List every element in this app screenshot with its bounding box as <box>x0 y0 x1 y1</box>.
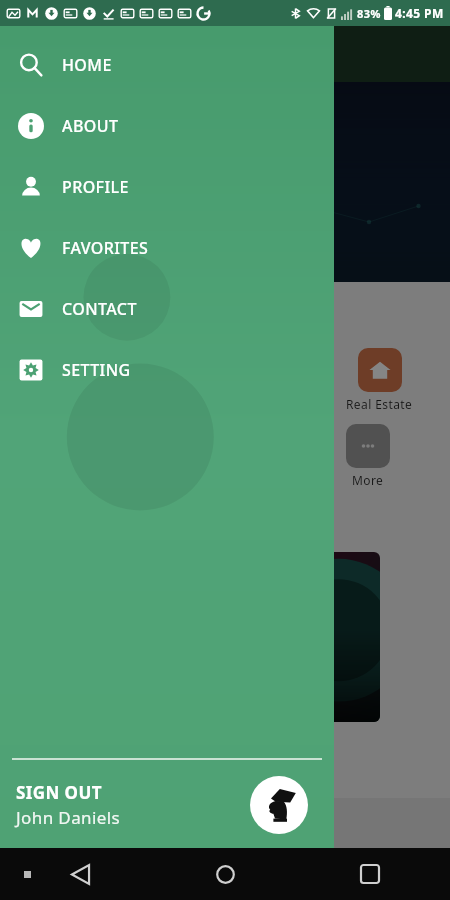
staticText: More <box>352 472 384 488</box>
staticText: ABOUT <box>62 115 119 137</box>
button[interactable]: Org Test 15 <box>150 552 380 722</box>
staticText: SIGN OUT <box>16 781 102 804</box>
button[interactable]: SETTING <box>0 339 334 400</box>
button[interactable]: PROFILE <box>0 156 334 217</box>
button[interactable]: Home <box>205 854 245 894</box>
staticText: John Daniels <box>16 806 121 829</box>
button[interactable]: FAVORITES <box>0 217 334 278</box>
staticText: PROFILE <box>62 176 129 198</box>
staticText: 4:45 PM <box>395 5 444 21</box>
button[interactable]: HOME <box>0 34 334 95</box>
staticText: SETTING <box>62 359 131 381</box>
staticText: CONTACT <box>62 298 137 320</box>
button[interactable]: Profile avatar <box>250 776 308 834</box>
staticText: FAVORITES <box>62 237 149 259</box>
button[interactable]: Search <box>28 276 328 324</box>
button[interactable]: Recents <box>350 854 390 894</box>
button[interactable]: Back <box>60 854 100 894</box>
staticText: HOME <box>62 54 112 76</box>
button[interactable]: SIGN OUT <box>0 762 334 848</box>
staticText: 83% <box>357 6 381 21</box>
button[interactable] <box>358 348 402 392</box>
staticText: Real Estate <box>346 396 413 412</box>
button[interactable] <box>346 424 390 468</box>
button[interactable]: CONTACT <box>0 278 334 339</box>
button[interactable]: ABOUT <box>0 95 334 156</box>
